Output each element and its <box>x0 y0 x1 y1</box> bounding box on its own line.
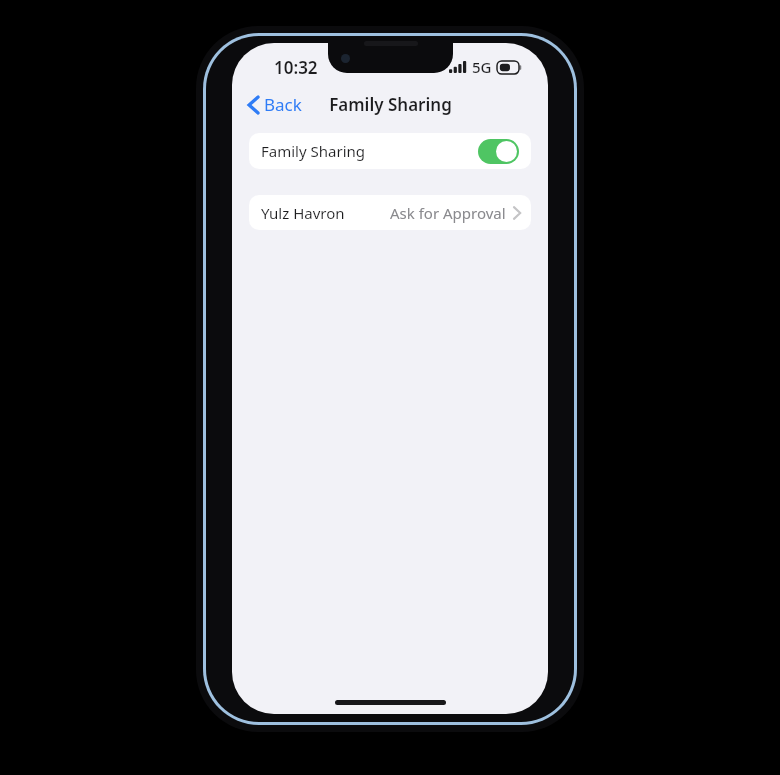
staticText: Yulz Havron <box>261 203 345 223</box>
staticText: Back <box>264 93 302 116</box>
staticText: Ask for Approval <box>390 203 506 223</box>
staticText: 10:32 <box>274 56 318 79</box>
button[interactable]: Family Sharing <box>249 133 531 169</box>
staticText: 5G <box>472 57 492 77</box>
staticText: Family Sharing <box>261 141 365 161</box>
button[interactable]: Back <box>242 89 308 120</box>
staticText: Family Sharing <box>329 93 452 116</box>
button[interactable]: Family Sharing toggle, on <box>478 139 519 164</box>
button[interactable]: Yulz Havron <box>249 195 531 230</box>
